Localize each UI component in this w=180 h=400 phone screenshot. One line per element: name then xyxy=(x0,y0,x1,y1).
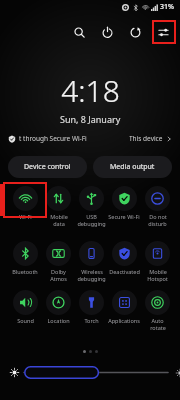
staticText: Wi-Fi xyxy=(19,213,32,220)
staticText: Media output xyxy=(110,162,155,172)
staticText: Mobile xyxy=(50,213,68,220)
staticText: Bluetooth xyxy=(12,268,38,275)
button[interactable]: This device xyxy=(129,134,172,143)
staticText: Secure Wi-Fi xyxy=(108,213,140,220)
button[interactable]: Restart xyxy=(126,23,144,41)
staticText: Sound xyxy=(17,317,34,324)
staticText: debugging xyxy=(77,220,106,227)
button[interactable]: Wi-Fi xyxy=(8,186,42,234)
staticText: 4:18 xyxy=(61,70,120,111)
button[interactable]: Device control xyxy=(8,156,87,178)
button[interactable]: Power xyxy=(98,23,116,41)
staticText: Hotspot xyxy=(147,275,168,282)
button[interactable]: Applications xyxy=(107,290,141,338)
staticText: USB xyxy=(86,213,97,220)
button[interactable]: Auto xyxy=(140,290,174,338)
staticText: disturb xyxy=(148,220,167,227)
staticText: debugging xyxy=(77,275,106,282)
button[interactable]: USB xyxy=(74,186,108,234)
staticText: Dolby xyxy=(51,268,66,275)
staticText: 31% xyxy=(160,2,174,12)
button[interactable]: Sound xyxy=(8,290,42,338)
staticText: Device control xyxy=(24,162,71,172)
button[interactable]: Do not xyxy=(140,186,174,234)
button[interactable]: Wireless xyxy=(74,241,108,289)
button[interactable]: Search xyxy=(70,23,88,41)
button[interactable]: Deactivated xyxy=(107,241,141,289)
button[interactable]: Dolby xyxy=(41,241,75,289)
staticText: Location xyxy=(47,317,70,324)
button[interactable]: Mobile xyxy=(41,186,75,234)
button[interactable]: Bluetooth xyxy=(8,241,42,289)
staticText: Sun, 8 January xyxy=(60,113,121,125)
staticText: t through Secure Wi-Fi xyxy=(19,134,87,143)
button[interactable]: Secure Wi-Fi xyxy=(107,186,141,234)
button[interactable]: Location xyxy=(41,290,75,338)
staticText: Do not xyxy=(149,213,167,220)
staticText: Mobile xyxy=(149,268,167,275)
button[interactable]: Media output xyxy=(93,156,172,178)
staticText: data xyxy=(53,220,65,227)
button[interactable]: Settings xyxy=(154,23,172,41)
staticText: Auto xyxy=(151,317,164,324)
staticText: rotate xyxy=(150,324,166,331)
staticText: Applications xyxy=(108,317,140,324)
button[interactable]: Torch xyxy=(74,290,108,338)
button[interactable] xyxy=(10,362,170,382)
staticText: Torch xyxy=(84,317,99,324)
staticText: Atmos xyxy=(50,275,67,282)
button[interactable]: Mobile xyxy=(140,241,174,289)
staticText: This device xyxy=(129,134,163,143)
staticText: Deactivated xyxy=(109,268,140,275)
staticText: Wireless xyxy=(81,268,103,275)
